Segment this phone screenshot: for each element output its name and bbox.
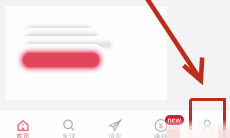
button[interactable]: 我的	[184, 119, 230, 138]
staticText: 消息	[108, 132, 122, 138]
staticText: 发现	[62, 132, 76, 138]
button[interactable]: 首页	[0, 119, 46, 138]
button[interactable]: 消息	[92, 119, 138, 138]
staticText: 赚钱	[154, 132, 168, 138]
staticText: 首页	[16, 132, 30, 138]
button[interactable]: new	[138, 119, 184, 138]
button[interactable]: 发现	[46, 119, 92, 138]
button[interactable]: Primary action	[14, 44, 108, 76]
staticText: new	[167, 116, 181, 124]
